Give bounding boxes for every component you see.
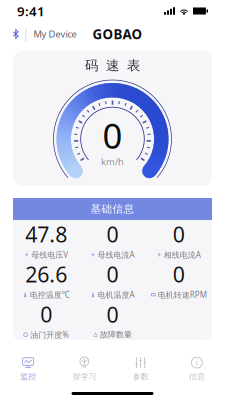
staticText: 油门开度% — [30, 329, 69, 340]
staticText: 0 — [106, 260, 118, 288]
staticText: 0 — [173, 220, 185, 248]
staticText: 0 — [102, 112, 122, 158]
staticText: GOBAO — [92, 25, 142, 43]
button[interactable]: 智学习 — [56, 351, 112, 387]
staticText: 电机温度A — [97, 289, 134, 300]
staticText: 信息 — [189, 372, 205, 381]
staticText: 电机转速RPM — [158, 289, 207, 300]
staticText: 参数 — [133, 372, 149, 381]
staticText: 监控 — [20, 372, 36, 381]
staticText: 0 — [106, 220, 118, 248]
staticText: 相线电流A — [164, 249, 201, 260]
staticText: 0 — [173, 260, 185, 288]
staticText: 26.6 — [25, 260, 67, 288]
staticText: | — [22, 26, 29, 42]
staticText: My Device — [33, 28, 76, 40]
staticText: 9:41 — [17, 2, 45, 20]
button[interactable]: 参数 — [112, 351, 169, 387]
button[interactable]: 监控 — [0, 351, 56, 387]
staticText: 0 — [40, 300, 52, 328]
staticText: 码 速 表 — [85, 57, 140, 74]
staticText: 母线电流A — [97, 249, 134, 260]
button[interactable]: 信息 — [169, 351, 225, 387]
staticText: 故障数量 — [100, 330, 132, 340]
staticText: 基础信息 — [90, 202, 134, 215]
staticText: 0 — [106, 300, 118, 329]
staticText: 母线电压V — [31, 249, 68, 260]
staticText: km/h — [101, 155, 124, 168]
staticText: 47.8 — [25, 220, 67, 248]
staticText: 电控温度°C — [30, 289, 70, 300]
staticText: 智学习 — [72, 372, 96, 381]
